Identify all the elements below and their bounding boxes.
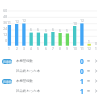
other: Open [94, 79, 98, 83]
button[interactable]: 読書数 [0, 56, 100, 66]
staticText: 冊 [87, 89, 91, 93]
staticText: 1 [80, 87, 84, 96]
staticText: 冊 [87, 79, 91, 83]
staticText: 本棚登録数 [16, 79, 33, 83]
staticText: 60 [0, 9, 7, 13]
staticText: 0 [0, 39, 7, 43]
staticText: 6 [27, 28, 35, 32]
staticText: 本棚登録数 [16, 59, 33, 63]
staticText: 1 [85, 40, 93, 44]
staticText: 8 [56, 47, 64, 51]
staticText: 48 [0, 15, 7, 19]
staticText: 0 [92, 42, 100, 46]
staticText: 3 [20, 47, 28, 51]
staticText: 10 [71, 47, 79, 51]
staticText: 6 [34, 28, 42, 32]
staticText: 5 [42, 29, 50, 33]
staticText: 7 [49, 47, 57, 51]
staticText: 24 [0, 27, 7, 31]
other: Open [94, 89, 98, 93]
staticText: 4 [27, 47, 35, 51]
button[interactable]: 読み終わった本 [0, 86, 100, 96]
staticText: 12 [20, 19, 28, 23]
staticText: 6 [42, 47, 50, 51]
other: Open [94, 59, 98, 63]
staticText: 12 [78, 19, 86, 23]
staticText: 冊 [87, 69, 91, 73]
staticText: 0 [80, 67, 84, 76]
staticText: 冊 [87, 59, 91, 63]
staticText: 読書数 [3, 60, 12, 64]
staticText: 12 [0, 33, 7, 37]
staticText: 2 [13, 47, 21, 51]
staticText: 読書数 [3, 80, 12, 84]
staticText: 0 [80, 57, 84, 66]
staticText: 9 [63, 47, 71, 51]
staticText: 読み終わった本 [16, 69, 41, 73]
button[interactable]: 読書数 [0, 76, 100, 86]
button[interactable]: 読み終わった本 [0, 66, 100, 76]
staticText: 12 [13, 20, 21, 24]
staticText: 1 [92, 47, 100, 51]
staticText: 読み終わった本 [16, 89, 41, 93]
staticText: 11 [78, 47, 86, 51]
staticText: 1 [5, 47, 13, 51]
staticText: 12 [85, 47, 93, 51]
staticText: 6 [56, 29, 64, 33]
staticText: 5 [34, 47, 42, 51]
staticText: 5 [63, 29, 71, 33]
staticText: 10 [71, 22, 79, 26]
staticText: 11 [5, 21, 13, 25]
staticText: 36 [0, 21, 7, 25]
staticText: 6 [49, 28, 57, 32]
other: Open [94, 69, 98, 73]
staticText: 1 [80, 77, 84, 86]
